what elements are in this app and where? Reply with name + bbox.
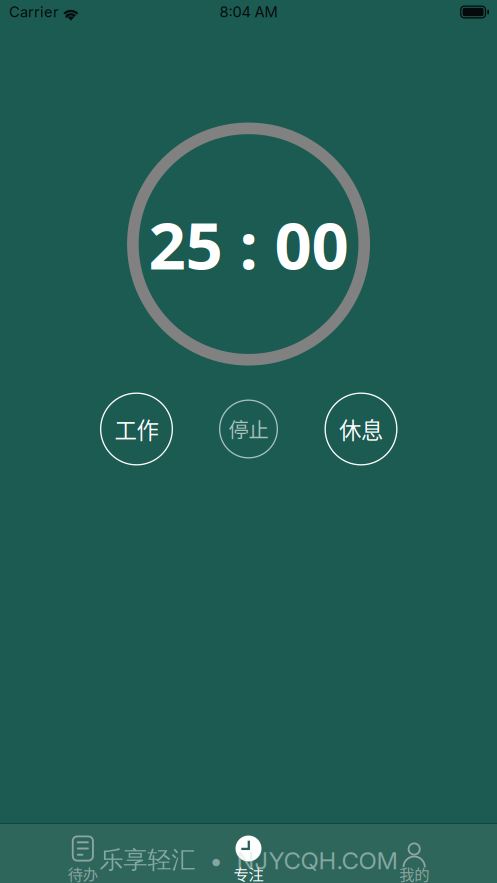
staticText: 25 : 00 — [149, 201, 349, 287]
staticText: 工作 — [114, 413, 158, 445]
button[interactable]: 待办 — [0, 824, 166, 883]
staticText: 专注 — [233, 862, 263, 883]
staticText: 乐享轻汇 • NJYCQH.COM — [99, 845, 397, 875]
button[interactable]: 休息 — [324, 392, 397, 465]
staticText: 休息 — [339, 413, 383, 445]
staticText: 我的 — [399, 862, 429, 883]
staticText: Carrier — [9, 3, 59, 21]
button[interactable]: 专注 — [166, 824, 331, 883]
staticText: 8:04 AM — [219, 3, 277, 21]
button[interactable]: 工作 — [100, 392, 173, 465]
staticText: 待办 — [68, 862, 98, 883]
button[interactable]: 我的 — [331, 824, 497, 883]
button[interactable]: 停止 — [219, 399, 278, 458]
staticText: 停止 — [228, 414, 268, 444]
